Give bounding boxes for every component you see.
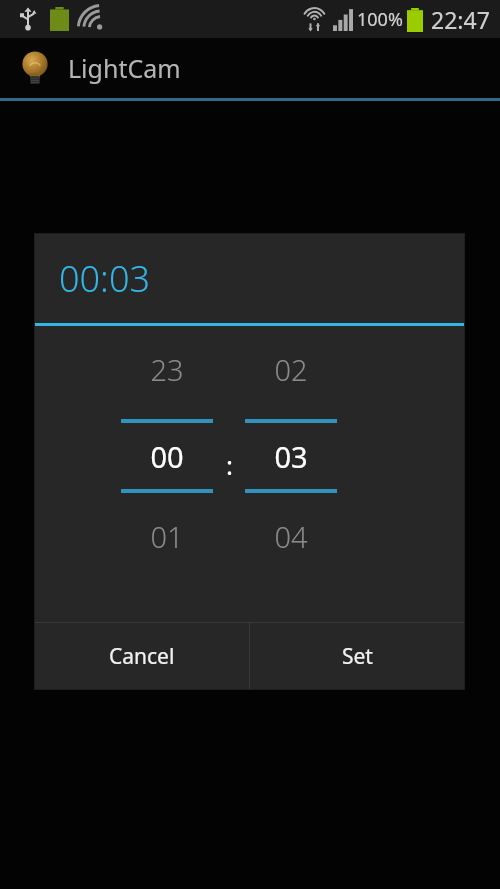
staticText: : (226, 447, 233, 482)
staticText: LightCam (68, 51, 181, 85)
button[interactable]: 00 (121, 423, 213, 489)
staticText: 22:47 (431, 4, 490, 35)
button[interactable]: 01 (121, 517, 213, 556)
staticText: Set (342, 642, 373, 671)
staticText: 100% (357, 7, 403, 32)
staticText: 00 (150, 437, 184, 476)
button[interactable]: 04 (245, 517, 337, 556)
button[interactable]: 03 (245, 423, 337, 489)
button[interactable]: Set (250, 623, 464, 689)
button[interactable]: 23 (121, 350, 213, 389)
staticText: Cancel (109, 642, 175, 671)
staticText: 03 (274, 437, 308, 476)
button[interactable]: 02 (245, 350, 337, 389)
button[interactable]: Cancel (35, 623, 249, 689)
staticText: 00:03 (59, 254, 151, 303)
